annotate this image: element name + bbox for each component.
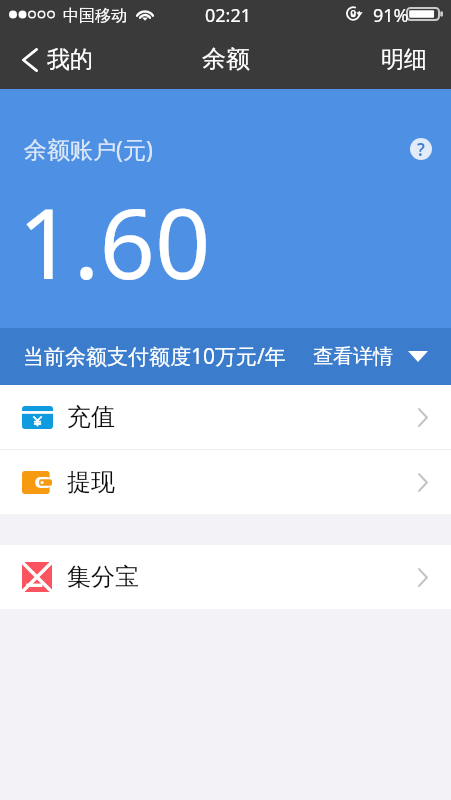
button[interactable]: 充值	[0, 385, 451, 449]
staticText: 我的	[47, 45, 93, 74]
staticText: 1.60	[18, 175, 211, 307]
staticText: 02:21	[205, 3, 252, 28]
staticText: 中国移动	[63, 6, 127, 26]
staticText: 充值	[67, 402, 115, 432]
button[interactable]: 集分宝	[0, 545, 451, 609]
staticText: 余额	[202, 44, 250, 74]
staticText: 查看详情	[313, 344, 393, 369]
staticText: 91%	[373, 3, 409, 28]
button[interactable]: 帮助	[409, 137, 433, 161]
button[interactable]: 明细	[369, 36, 451, 83]
staticText: 当前余额支付额度10万元/年	[23, 342, 286, 371]
staticText: 余额账户(元)	[24, 133, 153, 164]
staticText: 集分宝	[67, 562, 139, 592]
staticText: 明细	[381, 45, 427, 74]
button[interactable]: 查看详情	[303, 336, 451, 377]
button[interactable]: 提现	[0, 450, 451, 514]
button[interactable]: 我的	[0, 36, 105, 83]
staticText: 提现	[67, 467, 115, 497]
staticText: ?	[417, 138, 425, 161]
